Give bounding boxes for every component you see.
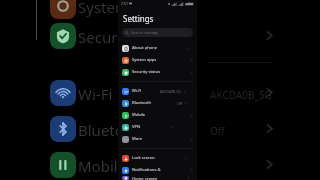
button[interactable]: Lock screen [118,152,197,164]
staticText: Off [177,101,182,106]
staticText: AKCDA0B_5G [160,89,181,94]
button[interactable]: Securi [0,18,320,54]
button[interactable]: Home screen [118,176,197,180]
button[interactable]: System [0,0,320,24]
staticText: Off [210,124,225,138]
button[interactable]: Notifications & status bar [118,164,197,176]
staticText: Notifications & status bar [132,167,161,173]
button[interactable]: Search settings [122,28,193,37]
button[interactable]: Mobile [0,147,320,180]
staticText: Securi [78,27,122,47]
staticText: Security status [132,69,161,75]
staticText: Mobile networks [132,112,161,118]
staticText: Blueto [78,120,124,140]
staticText: Wi-Fi [78,84,113,104]
staticText: VPN [132,124,141,130]
button[interactable]: Blueto [0,111,320,147]
staticText: Mobile [78,156,127,176]
staticText: Search settings [131,30,159,35]
button[interactable]: VPN [118,121,197,133]
button[interactable]: Mobile networks [118,109,197,121]
button[interactable]: Wi-Fi [0,75,320,111]
button[interactable]: More connectivity options [118,133,197,145]
staticText: About phone [132,45,158,51]
button[interactable]: System apps updater [118,54,197,66]
staticText: Lock screen [132,155,155,161]
button[interactable]: About phone [118,42,197,54]
staticText: System [78,0,129,17]
staticText: AKCDA0B_5G [210,88,272,102]
staticText: Home screen [132,176,158,180]
staticText: More connectivity options [132,136,161,142]
button[interactable]: Security status [118,66,197,78]
staticText: System apps updater [132,57,161,63]
staticText: 7:51 [121,1,128,6]
staticText: Settings [123,13,154,24]
button[interactable]: Bluetooth [118,97,197,109]
button[interactable]: Wi-Fi [118,85,197,97]
staticText: Bluetooth [132,100,151,106]
staticText: Wi-Fi [132,88,142,94]
